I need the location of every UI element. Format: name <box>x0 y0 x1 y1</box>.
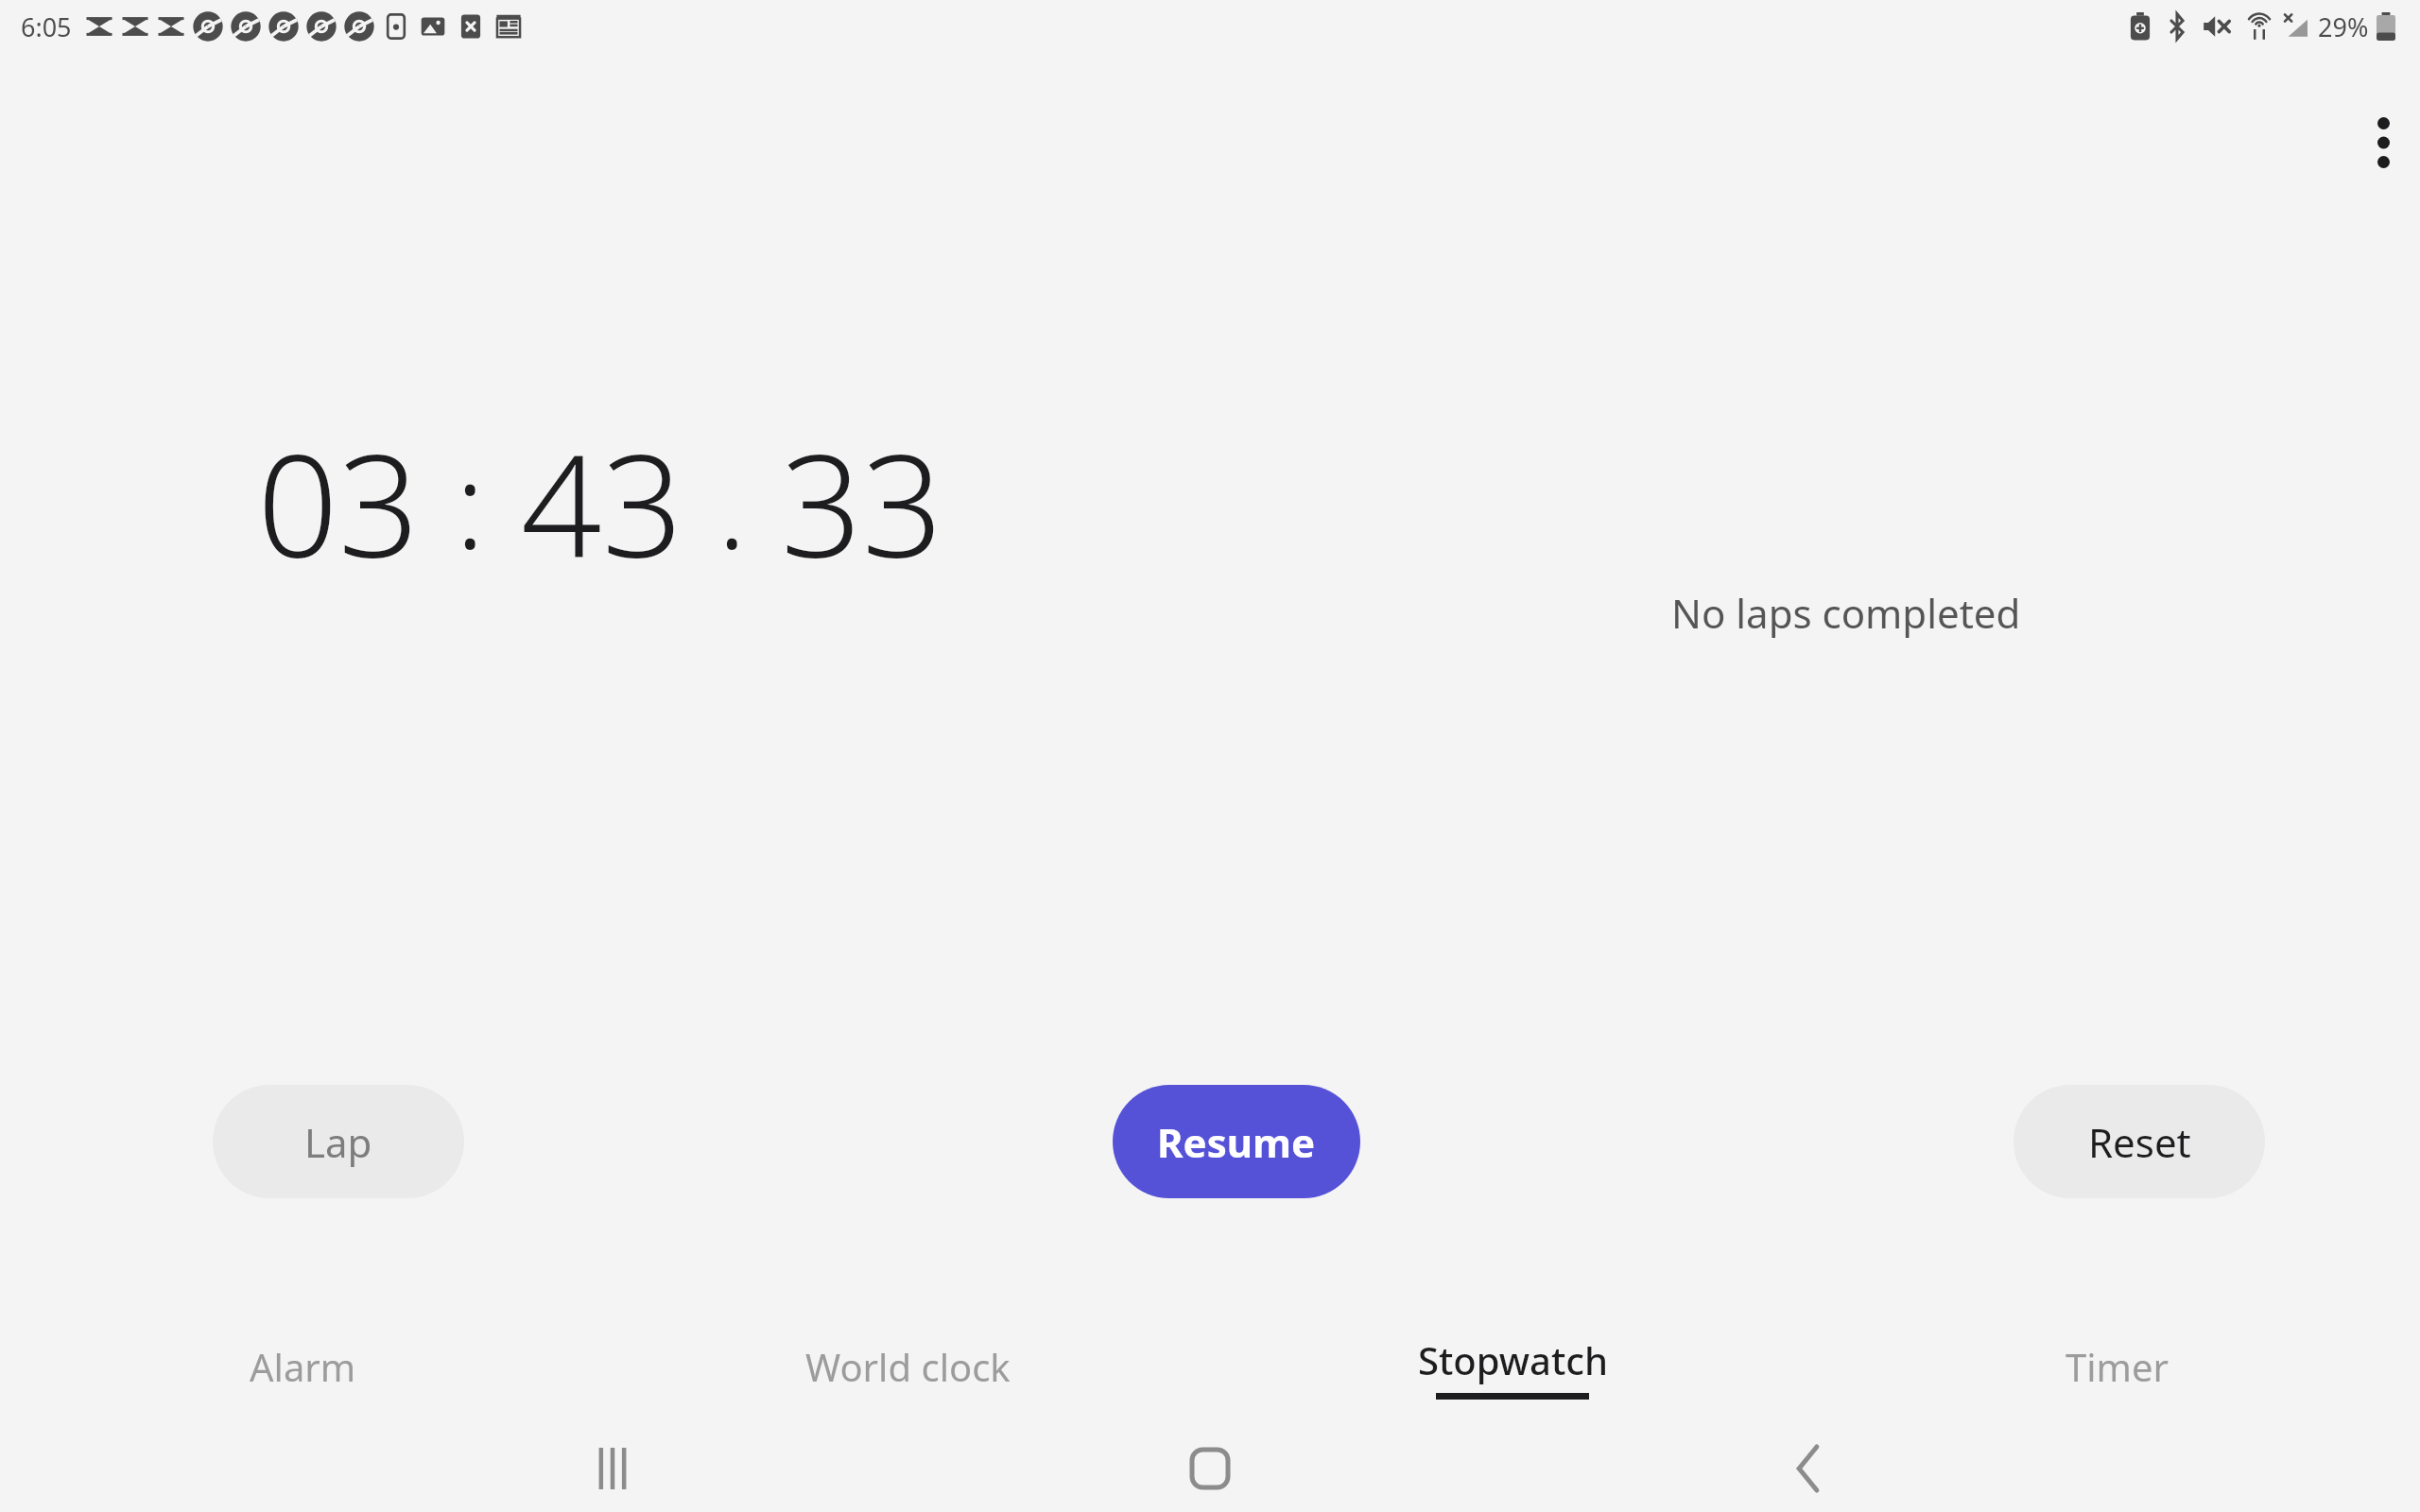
staticText: 6:05 <box>21 9 72 44</box>
staticText: Timer <box>2066 1341 2169 1392</box>
staticText: 29% <box>2318 9 2369 44</box>
staticText: Reset <box>2088 1115 2191 1169</box>
button[interactable]: Reset <box>2014 1085 2265 1198</box>
staticText: World clock <box>805 1341 1011 1392</box>
button[interactable]: Stopwatch <box>1210 1319 1815 1414</box>
staticText: : <box>456 422 485 583</box>
button[interactable]: Lap <box>213 1085 464 1198</box>
staticText: No laps completed <box>1671 586 2021 640</box>
button[interactable]: Recents <box>556 1425 669 1512</box>
staticText: . <box>717 422 747 583</box>
button[interactable]: Home <box>1153 1425 1267 1512</box>
staticText: 33 <box>781 406 943 599</box>
staticText: Lap <box>304 1115 372 1169</box>
staticText: Stopwatch <box>1418 1334 1608 1385</box>
button[interactable]: World clock <box>605 1319 1210 1414</box>
button[interactable]: Resume <box>1113 1085 1360 1198</box>
staticText: Resume <box>1157 1115 1316 1169</box>
button[interactable]: Alarm <box>0 1319 605 1414</box>
staticText: Alarm <box>250 1341 356 1392</box>
button[interactable]: Timer <box>1815 1319 2420 1414</box>
staticText: 43 <box>521 406 683 599</box>
button[interactable]: More options <box>2331 91 2420 195</box>
button[interactable]: Back <box>1751 1425 1864 1512</box>
staticText: 03 <box>257 406 420 599</box>
